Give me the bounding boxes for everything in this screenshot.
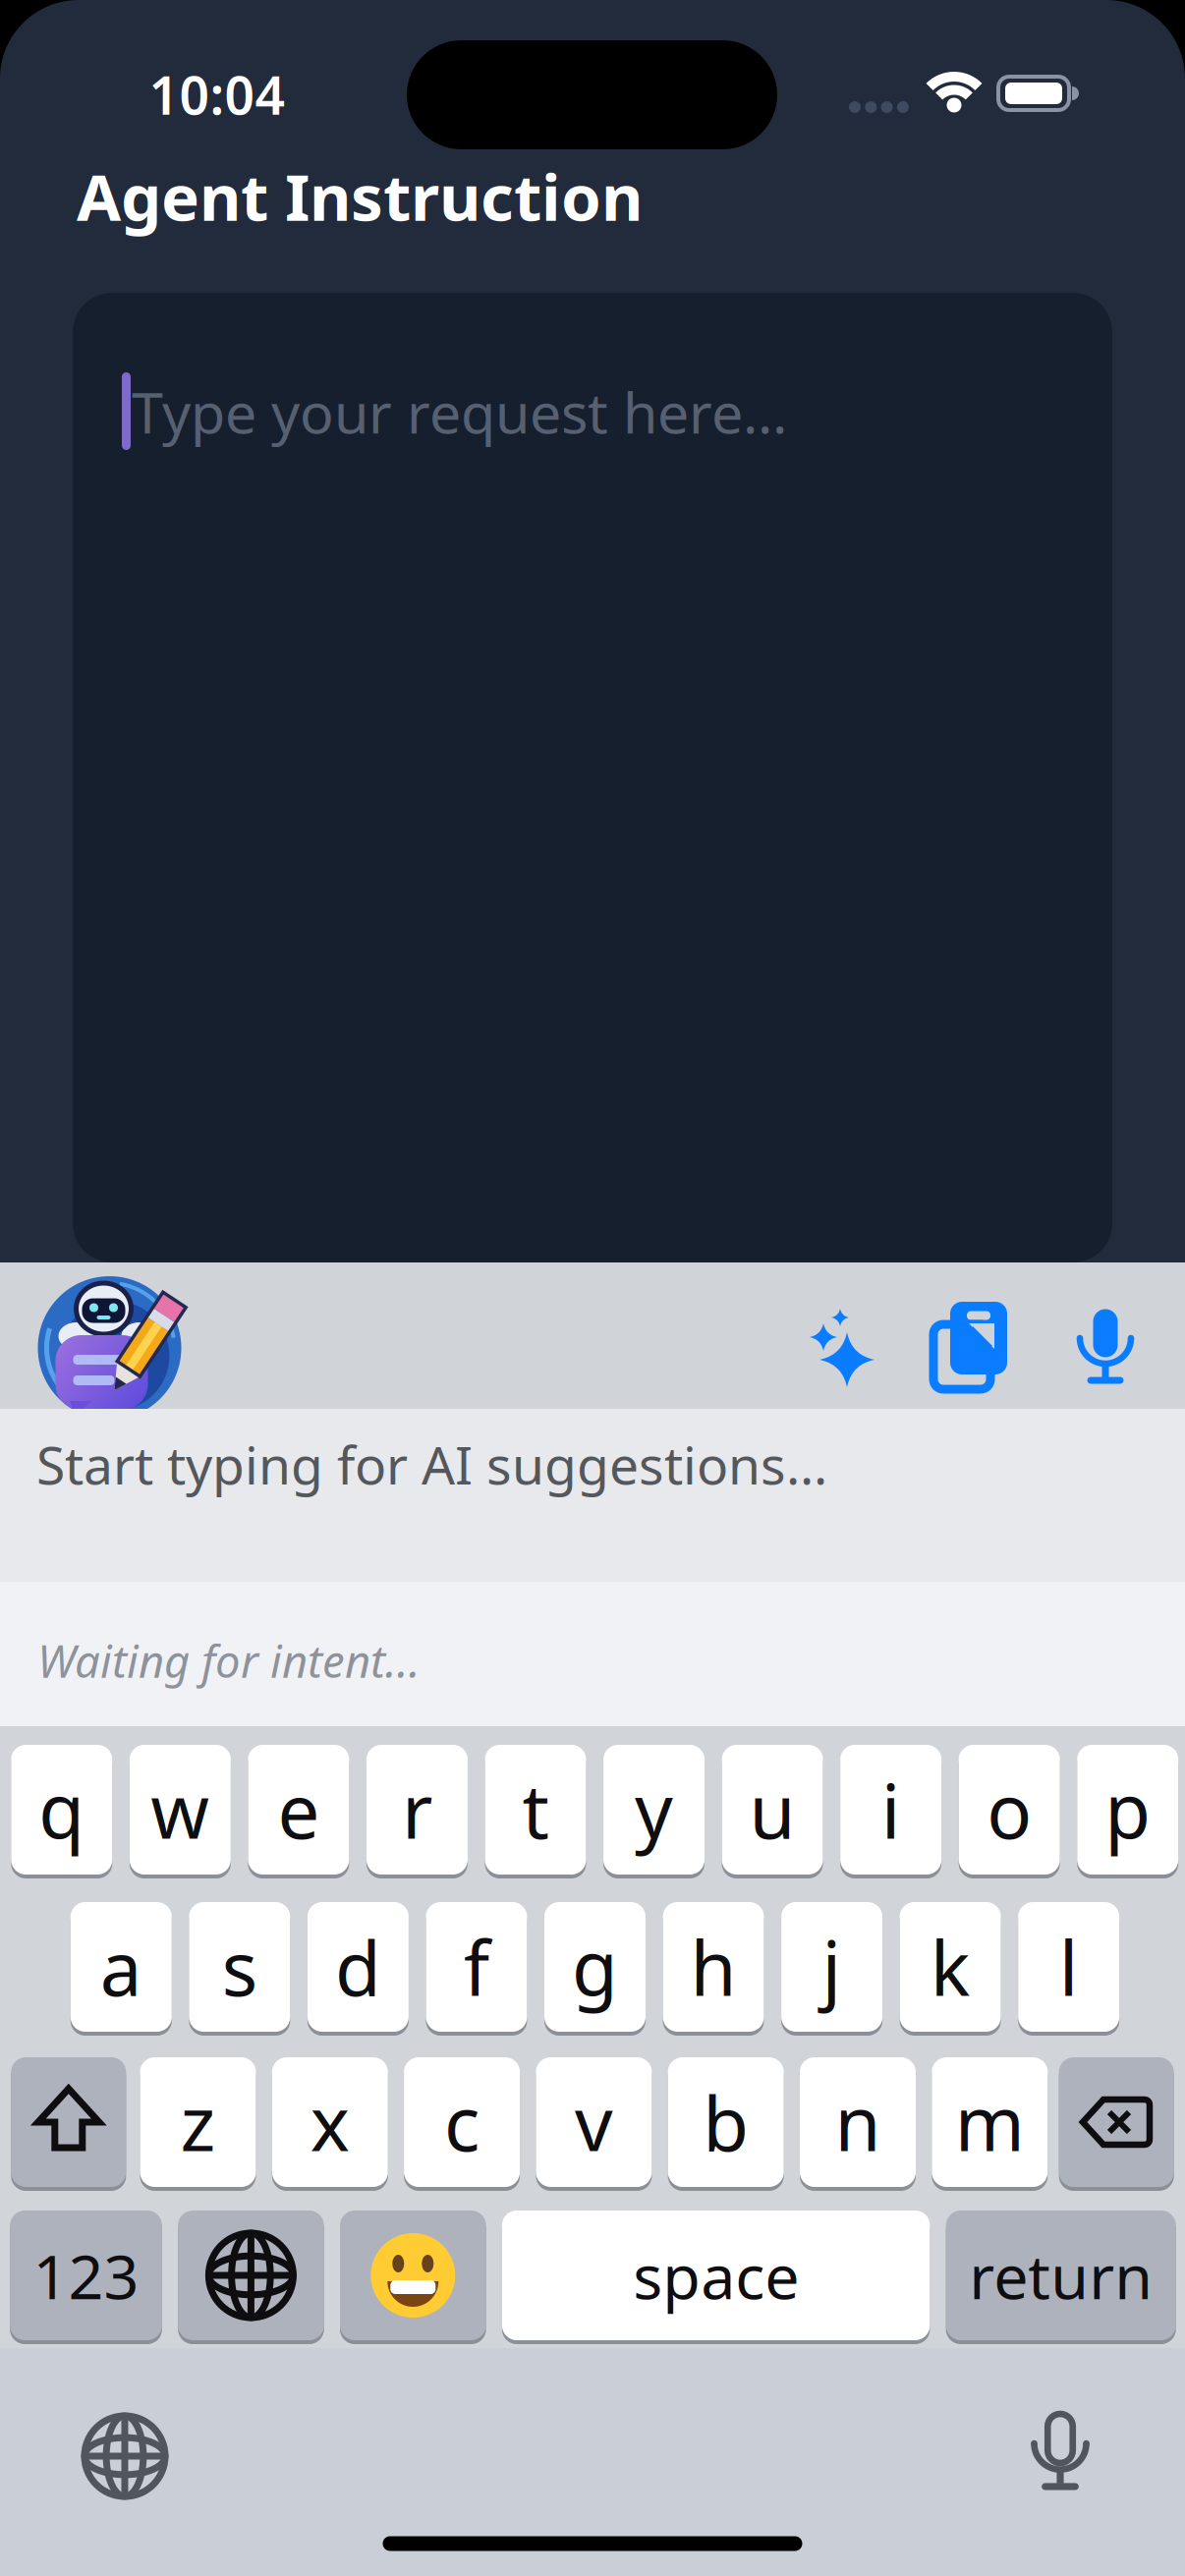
staticText: Type your request here... (132, 374, 787, 449)
button[interactable] (930, 1299, 1012, 1393)
button[interactable]: space (502, 2211, 930, 2340)
button[interactable] (340, 2211, 486, 2340)
staticText: Start typing for AI suggestions... (36, 1429, 827, 1499)
button[interactable] (1076, 1304, 1135, 1386)
button[interactable]: c (404, 2057, 520, 2187)
button[interactable]: a (71, 1902, 172, 2032)
button[interactable]: r (366, 1745, 468, 1875)
button[interactable]: n (800, 2057, 916, 2187)
staticText: return (969, 2234, 1153, 2316)
button[interactable]: b (668, 2057, 784, 2187)
staticText: v (575, 2072, 613, 2172)
button[interactable]: q (11, 1745, 112, 1875)
button[interactable]: e (248, 1745, 349, 1875)
button[interactable]: z (140, 2057, 256, 2187)
button[interactable]: g (544, 1902, 646, 2032)
staticText: o (987, 1760, 1032, 1859)
button[interactable]: p (1077, 1745, 1178, 1875)
button[interactable]: f (426, 1902, 527, 2032)
staticText: r (402, 1760, 432, 1859)
button[interactable] (1030, 2410, 1091, 2496)
staticText: a (100, 1917, 142, 2016)
staticText: 10:04 (149, 60, 285, 129)
button[interactable]: m (932, 2057, 1048, 2187)
staticText: d (335, 1917, 381, 2016)
staticText: u (749, 1760, 796, 1859)
staticText: f (464, 1917, 489, 2016)
staticText: 123 (33, 2234, 139, 2316)
staticText: j (822, 1917, 842, 2016)
staticText: t (522, 1760, 549, 1859)
button[interactable] (81, 2412, 169, 2500)
button[interactable]: j (781, 1902, 882, 2032)
button[interactable] (793, 1293, 881, 1401)
staticText: Waiting for intent... (37, 1631, 421, 1690)
button[interactable]: l (1018, 1902, 1119, 2032)
button[interactable]: 123 (10, 2211, 162, 2340)
button[interactable] (11, 2057, 126, 2187)
staticText: s (222, 1917, 257, 2016)
button[interactable]: Start typing for AI suggestions... (0, 1409, 1185, 1582)
staticText: y (635, 1760, 673, 1859)
staticText: c (444, 2072, 480, 2172)
staticText: m (955, 2072, 1025, 2172)
button[interactable] (1059, 2057, 1174, 2187)
staticText: n (835, 2072, 881, 2172)
button[interactable]: h (663, 1902, 764, 2032)
button[interactable]: return (946, 2211, 1176, 2340)
button[interactable]: t (485, 1745, 586, 1875)
staticText: k (930, 1917, 970, 2016)
staticText: Agent Instruction (77, 153, 643, 239)
button[interactable]: y (603, 1745, 705, 1875)
button[interactable]: x (272, 2057, 388, 2187)
staticText: x (310, 2072, 350, 2172)
staticText: l (1059, 1917, 1079, 2016)
staticText: e (277, 1760, 320, 1859)
staticText: z (180, 2072, 216, 2172)
staticText: space (633, 2234, 799, 2316)
button[interactable]: s (189, 1902, 290, 2032)
staticText: w (151, 1760, 210, 1859)
button[interactable]: v (536, 2057, 652, 2187)
button[interactable]: u (722, 1745, 823, 1875)
button[interactable]: k (900, 1902, 1001, 2032)
button[interactable]: o (959, 1745, 1060, 1875)
button[interactable] (36, 1267, 183, 1417)
button[interactable]: d (307, 1902, 409, 2032)
button[interactable]: Type your request here... (73, 293, 1112, 1262)
staticText: g (572, 1917, 618, 2016)
staticText: p (1105, 1760, 1151, 1859)
staticText: b (703, 2072, 749, 2172)
button[interactable] (178, 2211, 324, 2340)
staticText: i (881, 1760, 901, 1859)
staticText: h (690, 1917, 736, 2016)
staticText: q (39, 1760, 85, 1859)
button[interactable]: i (840, 1745, 941, 1875)
button[interactable]: w (130, 1745, 231, 1875)
